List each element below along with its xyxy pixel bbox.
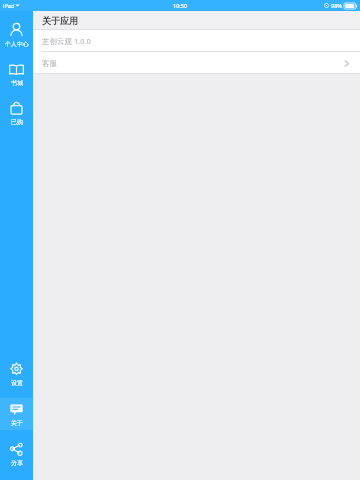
button[interactable]: 分享 xyxy=(0,438,33,470)
button[interactable]: 设置 xyxy=(0,358,33,390)
button[interactable]: 已购 xyxy=(0,97,33,129)
button[interactable]: 客服 xyxy=(33,52,360,74)
staticText: 98% xyxy=(331,2,342,9)
staticText: 个人中心 xyxy=(5,40,29,48)
staticText: 关于 xyxy=(11,419,23,427)
button[interactable]: 书城 xyxy=(0,58,33,90)
staticText: 关于应用 xyxy=(42,15,78,26)
button[interactable]: 芝创云观 1.0.0 xyxy=(33,30,360,52)
staticText: 设置 xyxy=(11,379,23,387)
staticText: iPad xyxy=(3,2,15,9)
staticText: 分享 xyxy=(11,459,23,467)
staticText: 芝创云观 1.0.0 xyxy=(42,36,91,46)
button[interactable]: 关于 xyxy=(0,398,33,430)
staticText: 10:50 xyxy=(173,2,188,9)
staticText: 书城 xyxy=(11,79,23,87)
staticText: 已购 xyxy=(11,118,23,126)
button[interactable]: 个人中心 xyxy=(0,19,33,51)
staticText: 客服 xyxy=(42,59,57,68)
